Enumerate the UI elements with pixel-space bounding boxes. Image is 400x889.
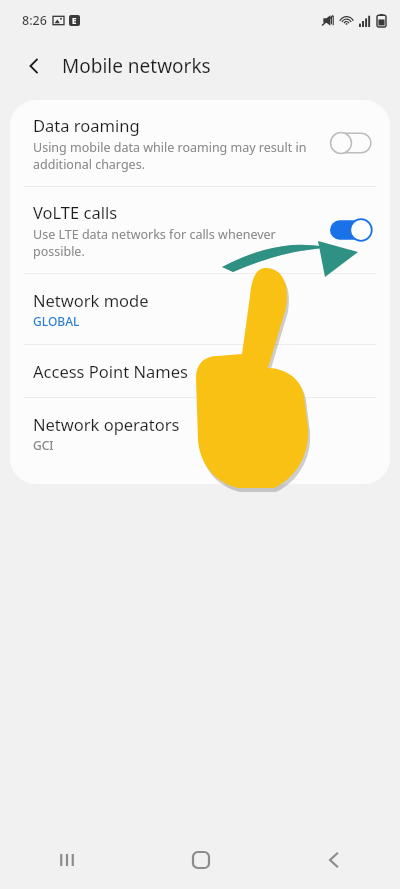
button[interactable]: Network operators [10, 398, 390, 468]
button[interactable]: Home [134, 830, 267, 889]
button[interactable]: Recent apps [0, 830, 134, 889]
button[interactable]: Data roaming [10, 100, 390, 186]
staticText: Mobile networks [62, 53, 211, 79]
staticText: Network mode [33, 289, 149, 311]
button[interactable]: Back [267, 830, 400, 889]
staticText: Data roaming [33, 114, 140, 136]
staticText: 8:26 [22, 12, 47, 29]
button[interactable]: Off [330, 132, 372, 154]
button[interactable]: Back [14, 46, 54, 86]
staticText: GLOBAL [33, 313, 80, 329]
button[interactable]: Access Point Names [10, 345, 390, 397]
staticText: Network operators [33, 413, 180, 435]
staticText: VoLTE calls [33, 201, 118, 223]
staticText: Using mobile data while roaming may resu… [33, 139, 307, 172]
staticText: Access Point Names [33, 360, 188, 382]
button[interactable]: VoLTE calls [10, 187, 390, 273]
staticText: E [72, 15, 77, 26]
staticText: Use LTE data networks for calls whenever… [33, 226, 276, 259]
button[interactable]: On [330, 219, 372, 241]
button[interactable]: Network mode [10, 274, 390, 344]
staticText: GCI [33, 437, 54, 453]
